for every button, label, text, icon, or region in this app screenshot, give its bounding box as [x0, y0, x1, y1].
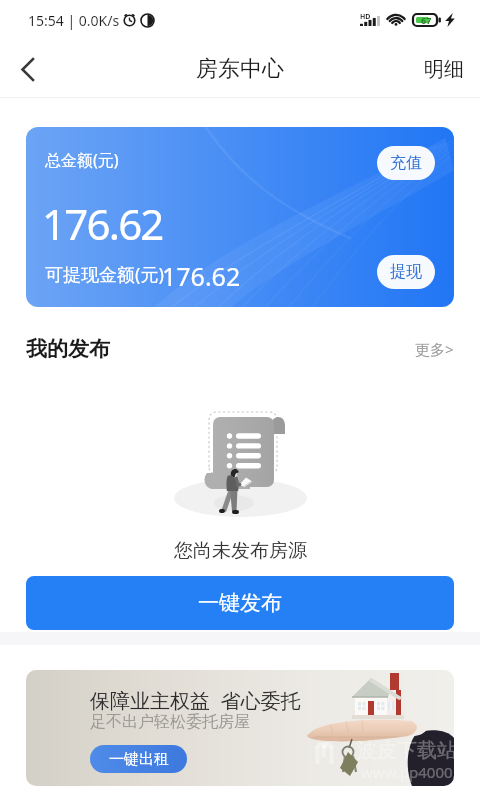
- button[interactable]: Back: [7, 49, 47, 89]
- staticText: 明细: [424, 57, 464, 82]
- button[interactable]: 充值: [377, 146, 435, 180]
- staticText: 波皮下载站: [357, 738, 454, 763]
- staticText: 保障业主权益 省心委托: [90, 687, 301, 714]
- staticText: 一键发布: [198, 590, 282, 616]
- staticText: 一键出租: [109, 750, 169, 769]
- button[interactable]: 一键出租: [90, 745, 187, 773]
- button[interactable]: 更多>: [411, 335, 458, 363]
- staticText: 可提现金额(元): [45, 262, 164, 287]
- staticText: 176.62: [162, 259, 241, 293]
- staticText: 15:54 | 0.0K/s: [28, 11, 120, 30]
- button[interactable]: 提现: [377, 255, 435, 289]
- staticText: 房东中心: [196, 55, 284, 83]
- staticText: 您尚未发布房源: [174, 539, 307, 563]
- button[interactable]: 保障业主权益 省心委托: [26, 670, 454, 786]
- staticText: 我的发布: [26, 336, 110, 362]
- staticText: 提现: [390, 262, 422, 282]
- staticText: 67: [421, 14, 432, 26]
- staticText: 176.62: [42, 195, 163, 252]
- staticText: 总金额(元): [45, 149, 119, 171]
- staticText: www.pp4000.com: [361, 762, 454, 782]
- button[interactable]: 一键发布: [26, 576, 454, 630]
- staticText: 足不出户轻松委托房屋: [90, 712, 250, 732]
- staticText: 充值: [390, 153, 422, 173]
- staticText: 更多>: [415, 339, 454, 359]
- button[interactable]: 总金额(元): [26, 127, 454, 307]
- button[interactable]: 明细: [418, 51, 470, 88]
- staticText: HD: [360, 12, 371, 22]
